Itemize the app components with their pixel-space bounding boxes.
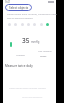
staticText: Measure twice daily — [5, 64, 33, 68]
staticText: Sed do eiusmod tempor — [7, 17, 33, 20]
button[interactable]: Day 5 — [33, 23, 36, 26]
staticText: Average — [16, 54, 25, 57]
staticText: Terms and conditions — [22, 96, 43, 99]
staticText: 9:41 — [5, 0, 11, 4]
staticText: 35 — [22, 36, 30, 45]
staticText: Lorem ipsum dolor sit amet consect — [9, 87, 46, 90]
staticText: Today — [40, 55, 47, 58]
staticText: mmHg — [31, 40, 40, 44]
button[interactable]: Day 6 — [40, 23, 43, 26]
staticText: Select objects — [9, 6, 29, 10]
button[interactable]: Day 7 — [46, 23, 49, 26]
button[interactable]: Select objects — [5, 4, 32, 11]
staticText: Last reading — [38, 50, 52, 53]
button[interactable]: Day 1 — [8, 23, 11, 26]
button[interactable]: Day 4 — [27, 23, 30, 26]
staticText: Lorem ipsum dolor sit amet, consectetur … — [7, 13, 57, 16]
button[interactable]: Day 3 — [21, 23, 24, 26]
button[interactable]: Day 2 — [14, 23, 17, 26]
